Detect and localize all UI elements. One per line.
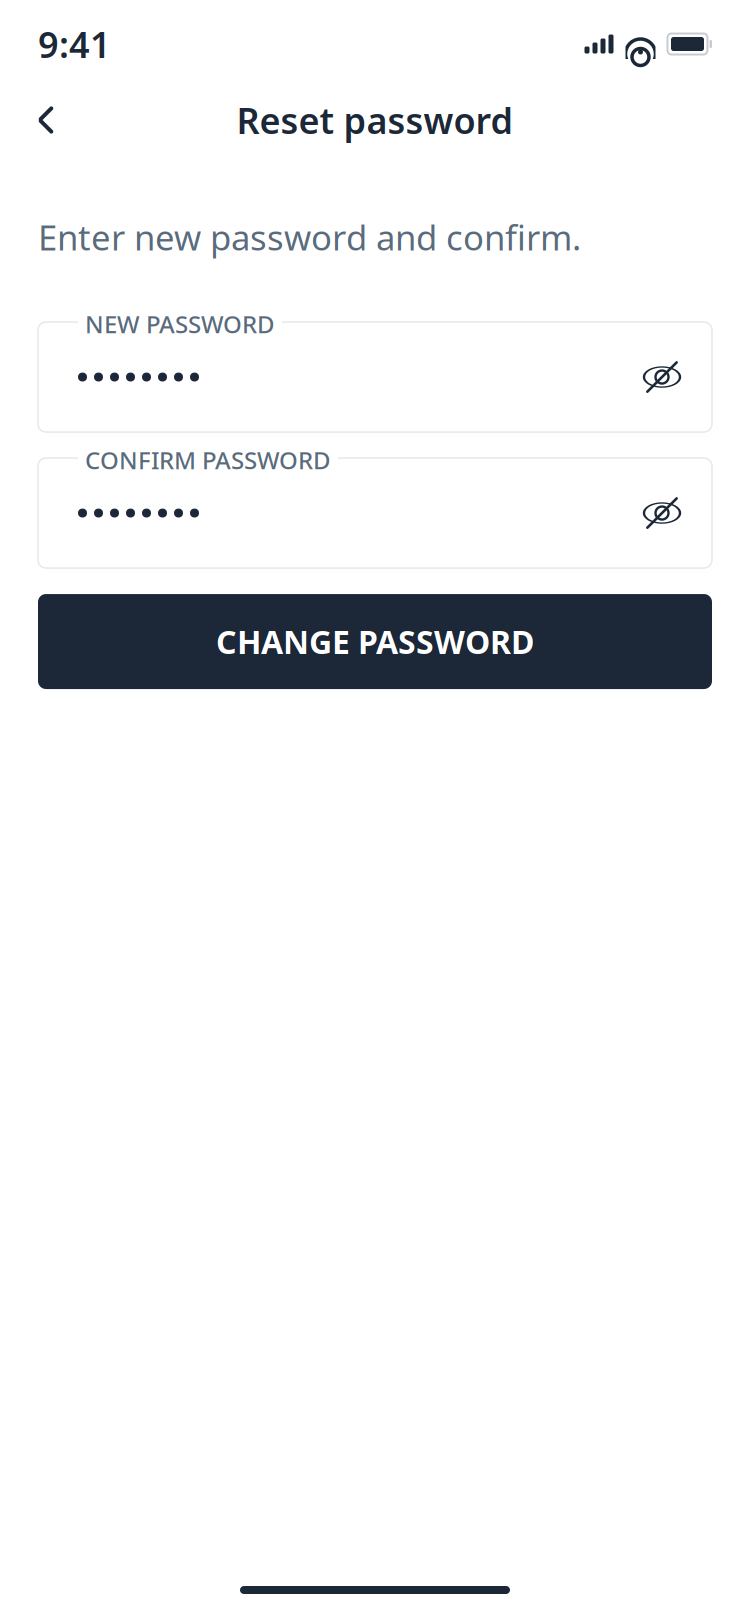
staticText: Enter new password and confirm. bbox=[38, 214, 581, 260]
staticText: Reset password bbox=[236, 96, 513, 144]
staticText: CHANGE PASSWORD bbox=[216, 620, 534, 663]
staticText: 9:41 bbox=[38, 20, 111, 68]
button[interactable]: Show confirm password bbox=[634, 485, 690, 541]
staticText: NEW PASSWORD bbox=[85, 308, 275, 340]
button[interactable]: Show new password bbox=[634, 349, 690, 405]
staticText: CONFIRM PASSWORD bbox=[85, 444, 331, 476]
button[interactable]: CHANGE PASSWORD bbox=[38, 594, 712, 689]
button[interactable]: Back bbox=[18, 92, 74, 148]
